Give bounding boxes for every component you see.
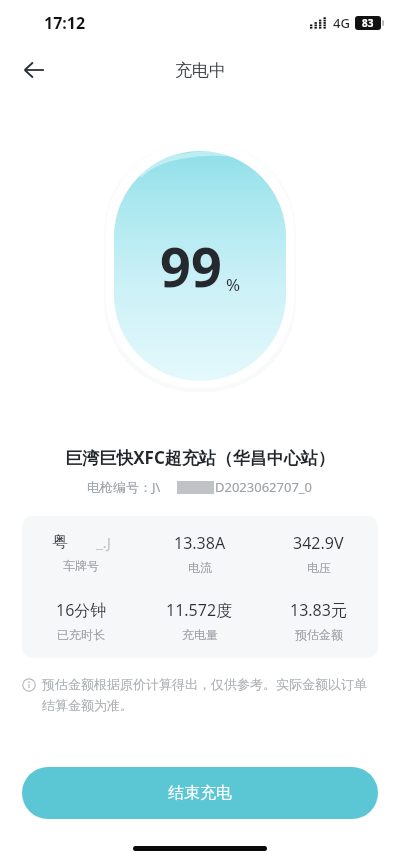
staticText: 83 xyxy=(362,16,374,30)
staticText: 预估金额根据原价计算得出，仅供参考。实际金额以订单结算金额为准。 xyxy=(42,676,378,714)
staticText: 342.9V xyxy=(293,532,344,554)
staticText: 电压 xyxy=(307,560,331,575)
staticText: 99 xyxy=(160,229,222,303)
staticText: 预估金额 xyxy=(295,627,343,642)
staticText: 4G xyxy=(333,14,350,32)
staticText: 16分钟 xyxy=(56,599,107,621)
staticText: 粤 xyxy=(52,532,68,552)
staticText: 11.572度 xyxy=(166,599,233,621)
staticText: 车牌号 xyxy=(63,558,99,573)
staticText: 13.83元 xyxy=(290,599,347,621)
staticText: 巨湾巨快XFC超充站（华昌中心站） xyxy=(65,446,335,469)
staticText: _.J xyxy=(96,532,111,552)
staticText: 结束充电 xyxy=(168,783,232,803)
staticText: 电枪编号：J\ xyxy=(87,478,161,496)
staticText: 充电量 xyxy=(182,627,218,642)
staticText: 充电中 xyxy=(175,60,226,81)
staticText: D2023062707_0 xyxy=(215,478,313,496)
button[interactable]: Back xyxy=(12,48,56,92)
staticText: 电流 xyxy=(188,560,212,575)
staticText: 13.38A xyxy=(174,532,226,554)
staticText: 17:12 xyxy=(44,12,86,34)
staticText: % xyxy=(226,273,241,296)
staticText: 已充时长 xyxy=(57,627,105,642)
button[interactable]: 结束充电 xyxy=(22,767,378,819)
